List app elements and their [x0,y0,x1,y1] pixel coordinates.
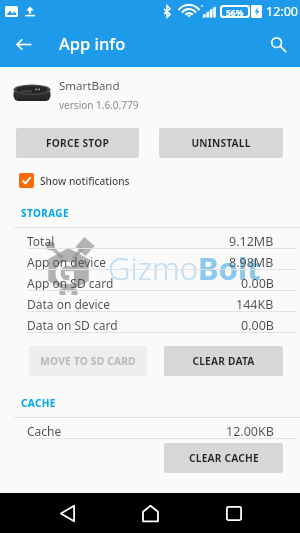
staticText: 144KB [236,296,274,313]
staticText: 12.00KB [226,423,274,440]
staticText: 0.00B [241,317,274,334]
staticText: 0.00B [241,275,274,292]
staticText: Show notifications [40,174,130,188]
staticText: SmartBand [59,78,120,94]
button[interactable]: Home [120,493,180,533]
staticText: FORCE STOP [46,136,109,150]
staticText: Gizmo [108,247,198,289]
button[interactable]: CLEAR CACHE [164,443,283,473]
staticText: CLEAR CACHE [189,451,259,465]
staticText: MOVE TO SD CARD [40,354,136,368]
button[interactable]: UNINSTALL [159,128,283,158]
button[interactable]: Show notifications [0,171,300,190]
staticText: CACHE [21,396,56,410]
button[interactable]: Recent apps [204,493,264,533]
staticText: version 1.6.0.779 [59,98,139,112]
staticText: STORAGE [21,206,69,220]
staticText: Total [27,233,55,249]
staticText: App on device [27,254,106,270]
staticText: App info [59,32,126,54]
staticText: G [54,251,77,293]
button[interactable]: Search [256,22,300,67]
staticText: 12:00 [266,3,298,20]
staticText: UNINSTALL [191,136,251,150]
staticText: 8.98MB [229,254,274,271]
staticText: CLEAR DATA [192,354,255,368]
staticText: Cache [27,423,62,439]
staticText: Data on SD card [27,317,118,333]
staticText: 56% [226,7,244,16]
button[interactable]: Navigate up [0,22,47,67]
button[interactable]: Back [37,493,97,533]
staticText: 9.12MB [229,233,274,250]
button[interactable]: FORCE STOP [16,128,139,158]
staticText: Bolt [198,247,261,289]
staticText: Data on device [27,296,111,312]
staticText: App on SD card [27,275,114,291]
button[interactable]: MOVE TO SD CARD [29,346,147,376]
button[interactable]: CLEAR DATA [164,346,283,376]
